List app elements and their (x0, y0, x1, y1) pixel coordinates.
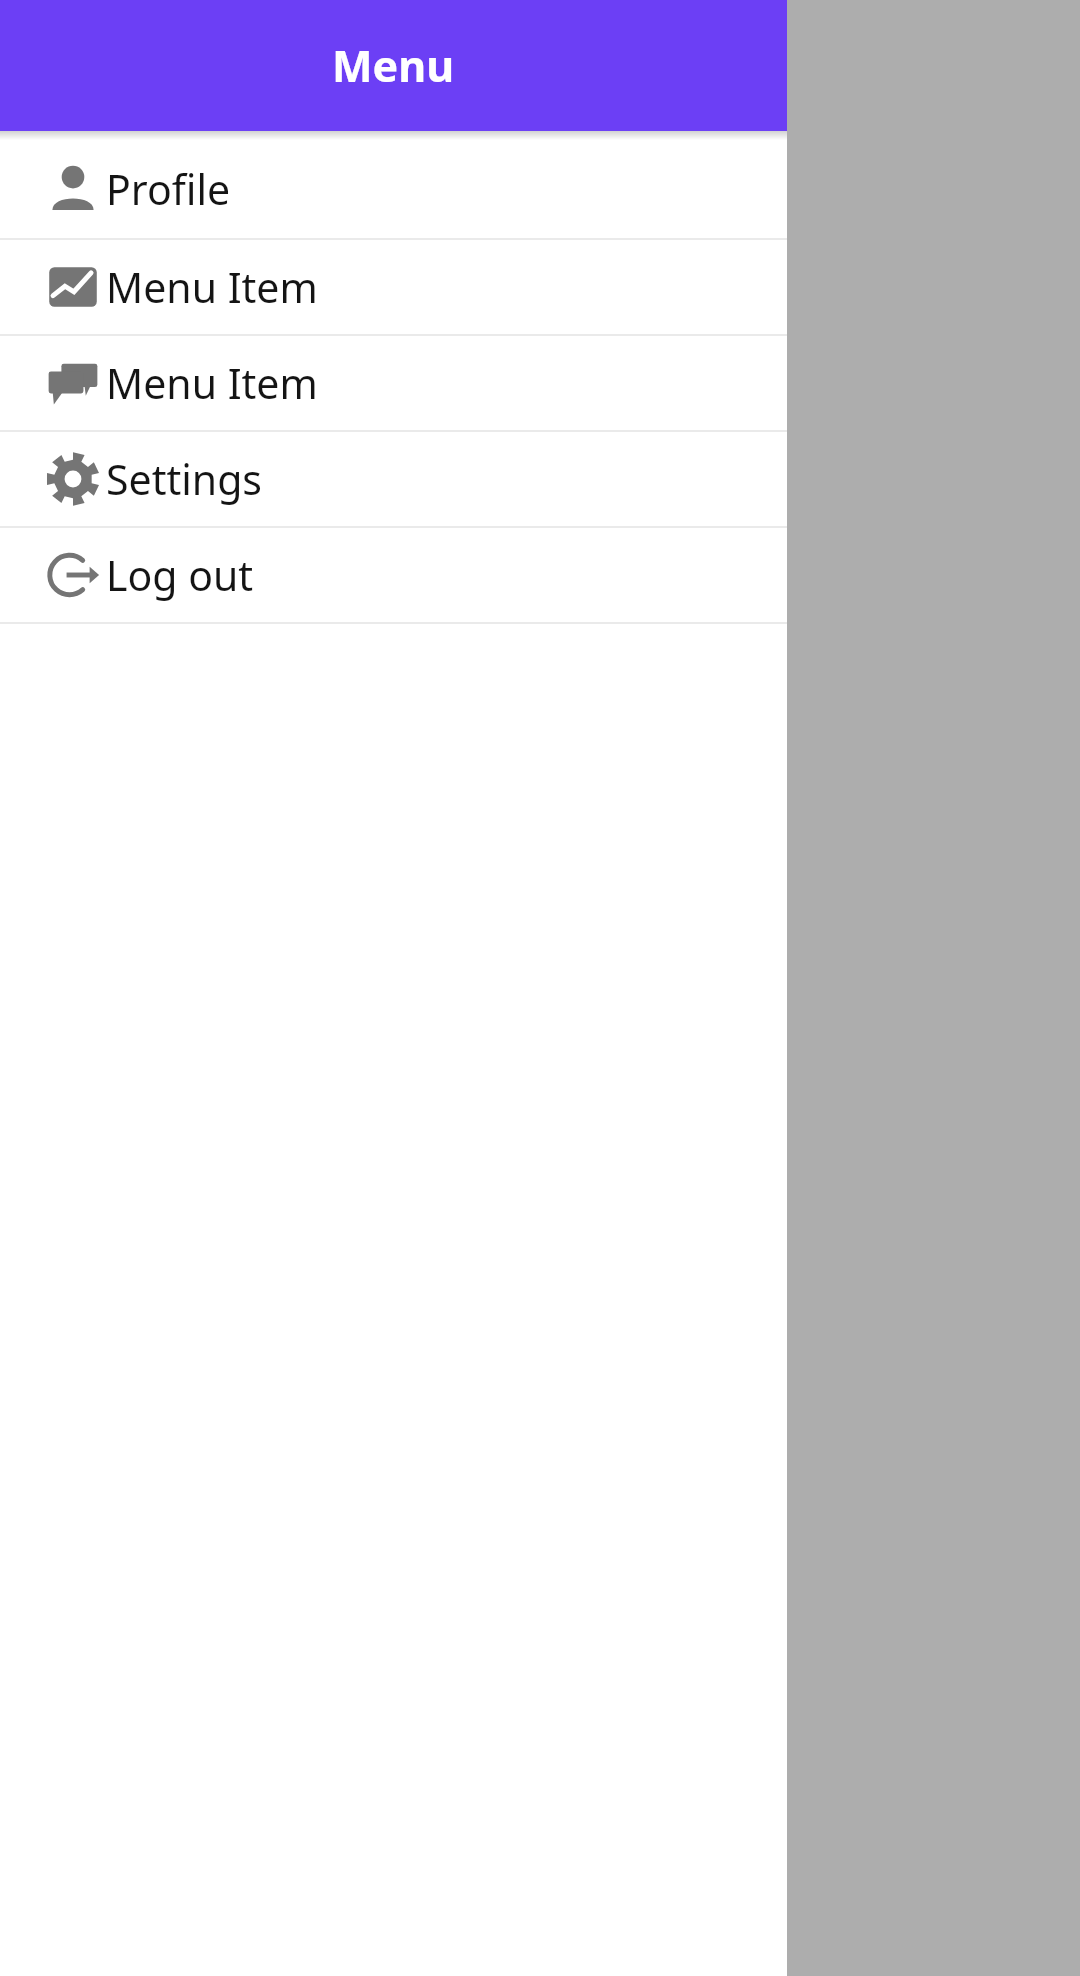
staticText: Settings (106, 451, 263, 507)
button[interactable]: Settings (0, 432, 787, 526)
button[interactable]: Log out (0, 528, 787, 622)
staticText: Menu Item (106, 355, 318, 411)
button[interactable]: Profile (0, 140, 787, 238)
button[interactable]: Menu Item (0, 336, 787, 430)
button[interactable]: Menu Item (0, 240, 787, 334)
staticText: Menu Item (106, 259, 318, 315)
staticText: Log out (106, 547, 254, 603)
staticText: Menu (332, 36, 455, 95)
staticText: Profile (106, 161, 231, 217)
